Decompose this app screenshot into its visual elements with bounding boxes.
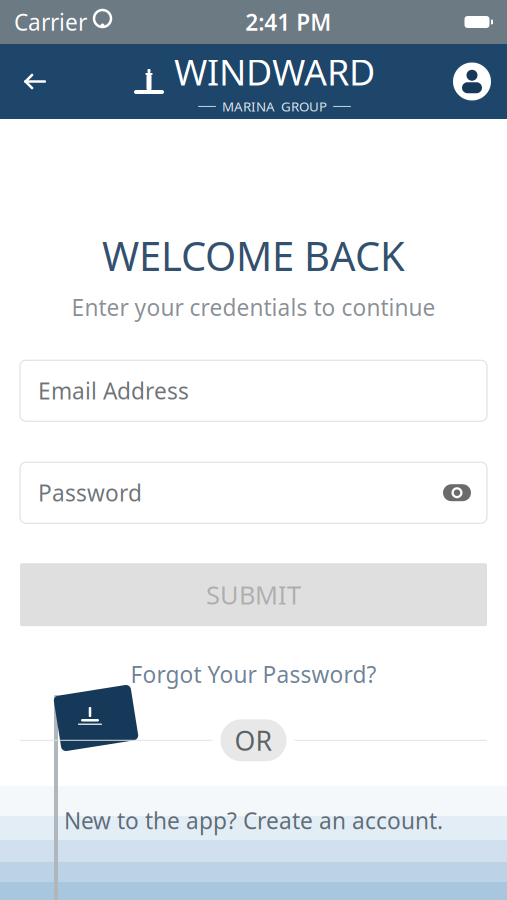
staticText: Email Address [38, 376, 189, 406]
button[interactable]: Forgot Your Password? [118, 651, 388, 697]
staticText: SUBMIT [206, 578, 301, 611]
staticText: WINDWARD [174, 48, 375, 95]
staticText: WELCOME BACK [102, 229, 405, 282]
button[interactable]: New to the app? Create an account. [52, 797, 455, 843]
staticText: Carrier [14, 7, 87, 37]
button[interactable]: Show password [437, 473, 477, 513]
staticText: OR [234, 723, 272, 758]
staticText: MARINA GROUP [222, 98, 327, 115]
staticText: 2:41 PM [245, 7, 331, 37]
button[interactable]: Back [8, 51, 62, 111]
button[interactable]: SUBMIT [20, 563, 487, 626]
staticText: Password [38, 478, 142, 508]
staticText: Enter your credentials to continue [71, 292, 435, 322]
staticText: New to the app? Create an account. [64, 805, 443, 835]
button[interactable]: Account [445, 51, 499, 111]
staticText: Forgot Your Password? [130, 659, 376, 689]
